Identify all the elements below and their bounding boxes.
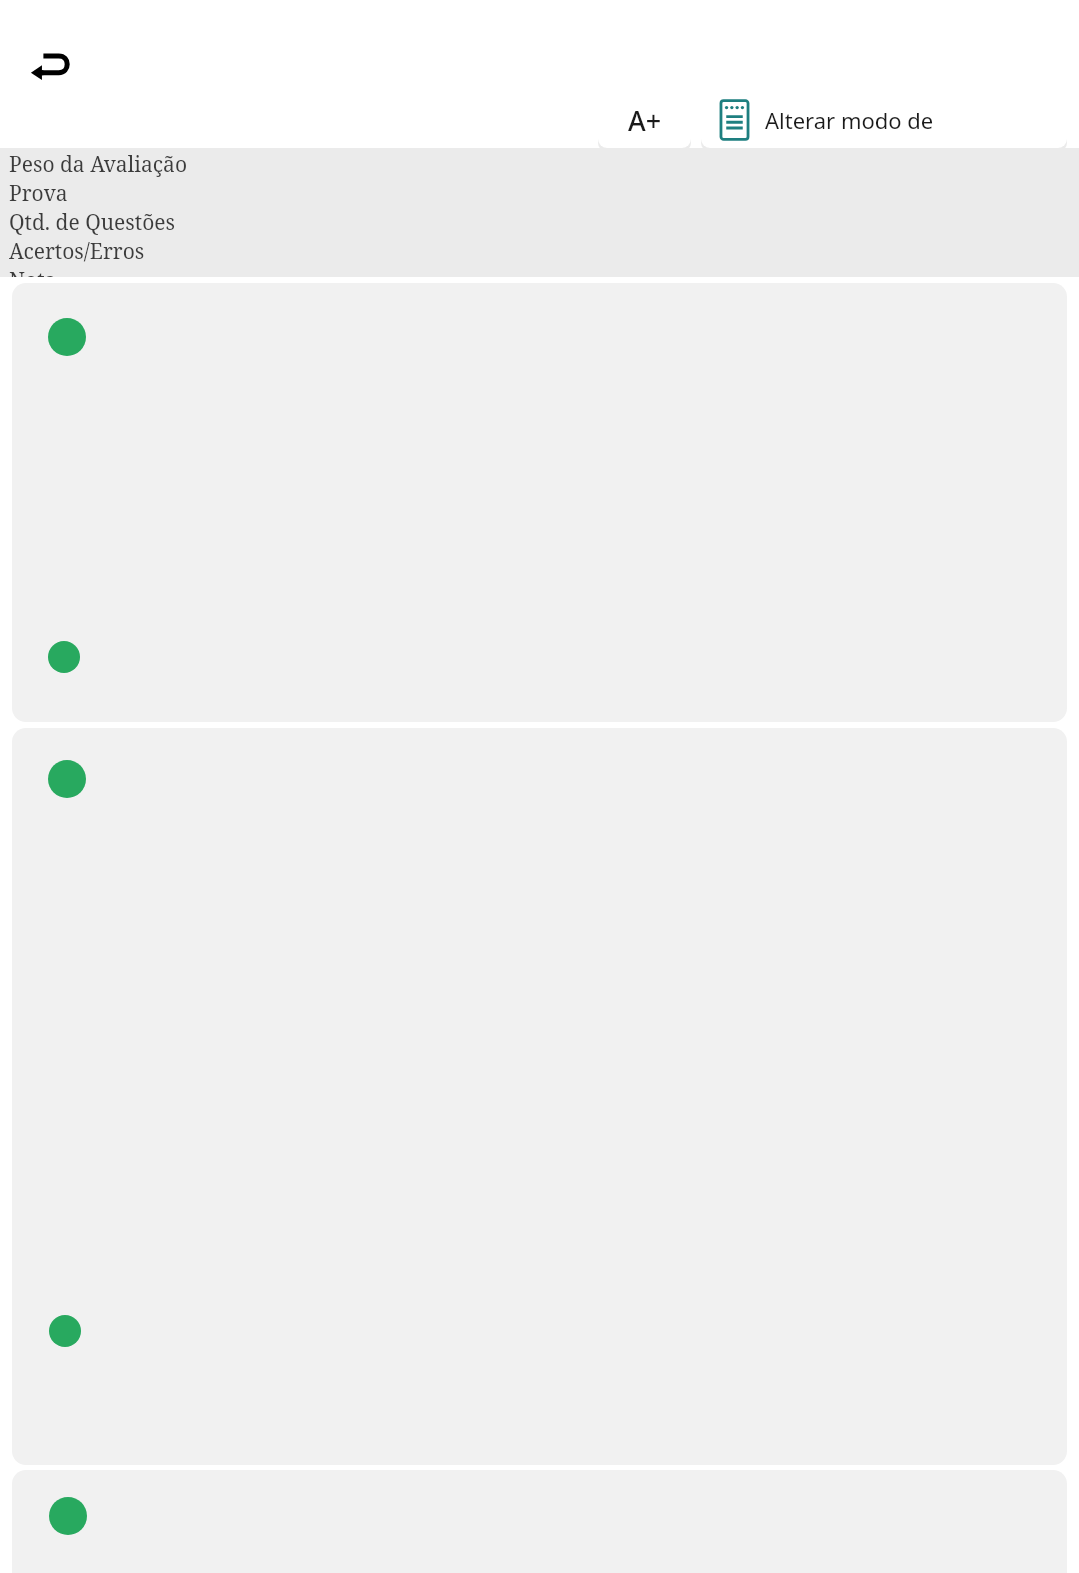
staticText: A+: [628, 102, 662, 139]
staticText: Peso da Avaliação: [9, 150, 187, 179]
staticText: Prova: [9, 179, 68, 208]
button[interactable]: [12, 1470, 1067, 1573]
staticText: Qtd. de Questões: [9, 208, 176, 237]
button[interactable]: [12, 283, 1067, 722]
staticText: Nota: [9, 266, 57, 277]
staticText: Alterar modo de visualização: [765, 105, 1055, 135]
staticText: Acertos/Erros: [9, 237, 145, 266]
button[interactable]: Alterar modo de visualização: [701, 92, 1067, 148]
button[interactable]: A+: [598, 92, 691, 148]
button[interactable]: [12, 728, 1067, 1465]
button[interactable]: Voltar: [20, 36, 86, 96]
